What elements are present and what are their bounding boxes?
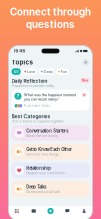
button[interactable]: ? <box>11 90 89 111</box>
staticText: Conversation Starters <box>26 128 68 133</box>
staticText: Deep <box>43 69 52 74</box>
staticText: A question to ponder today <box>11 84 54 88</box>
staticText: Get to Know Each Other <box>26 147 72 152</box>
staticText: questions <box>26 18 75 30</box>
button[interactable]: Relationship <box>11 162 89 178</box>
button[interactable]: Chats <box>59 209 76 213</box>
staticText: Relationship <box>26 166 51 171</box>
staticText: All <box>14 69 19 74</box>
staticText: Connect through <box>10 6 91 18</box>
staticText: 16:46 <box>13 48 25 54</box>
button[interactable]: Home <box>8 209 25 213</box>
button[interactable]: Deep Talks <box>11 181 89 197</box>
staticText: Love <box>27 69 35 74</box>
staticText: Best Categories <box>11 114 50 119</box>
staticText: Fun <box>61 69 67 74</box>
staticText: Discover new things <box>26 152 59 156</box>
button[interactable]: Love <box>22 68 37 75</box>
staticText: 12 answers today <box>23 104 50 107</box>
button[interactable]: Library <box>25 209 42 213</box>
staticText: Daily Reflection <box>11 78 47 84</box>
staticText: What was the happiest moment you can rec… <box>24 93 76 101</box>
staticText: ? <box>16 93 19 99</box>
button[interactable]: Get to Know Each Other <box>11 144 89 160</box>
staticText: Pick a theme to explore together <box>11 119 63 123</box>
button[interactable]: Fun <box>56 68 69 75</box>
button[interactable]: Deep <box>39 68 54 75</box>
button[interactable]: All <box>11 68 21 75</box>
staticText: Topics <box>11 59 32 66</box>
staticText: New <box>82 79 88 82</box>
staticText: Deep Talks <box>26 184 46 189</box>
staticText: Break the ice easily <box>26 134 58 138</box>
staticText: Go beyond small talk <box>26 190 60 194</box>
button[interactable]: Profile <box>76 209 92 213</box>
button[interactable]: Conversation Starters <box>11 125 89 141</box>
staticText: Deepen your connection <box>26 171 65 175</box>
button[interactable]: Profile <box>82 58 89 66</box>
button[interactable]: New question <box>42 208 59 214</box>
